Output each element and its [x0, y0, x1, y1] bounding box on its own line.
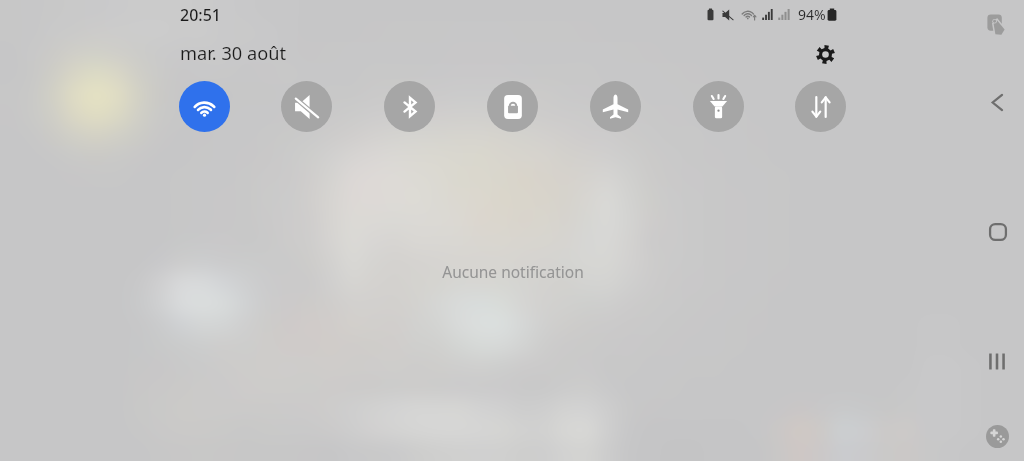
button[interactable]: Auto rotate locked [487, 81, 538, 132]
button[interactable]: Back [976, 82, 1017, 123]
button[interactable]: Settings [809, 38, 841, 70]
button[interactable]: Home [977, 211, 1018, 252]
button[interactable]: Screenshot [983, 11, 1011, 39]
button[interactable]: Flashlight [693, 81, 744, 132]
button[interactable]: Recents [976, 341, 1017, 382]
button[interactable]: Bluetooth [384, 81, 435, 132]
staticText: Aucune notification [442, 261, 584, 282]
button[interactable]: Mobile data [795, 81, 846, 132]
staticText: 94% [798, 5, 826, 24]
button[interactable]: Sound off [281, 81, 332, 132]
button[interactable]: Wi-Fi [179, 81, 230, 132]
staticText: mar. 30 août [180, 41, 286, 66]
staticText: 20:51 [180, 4, 221, 26]
button[interactable]: Airplane mode [590, 81, 641, 132]
button[interactable]: Game tools [983, 422, 1012, 451]
